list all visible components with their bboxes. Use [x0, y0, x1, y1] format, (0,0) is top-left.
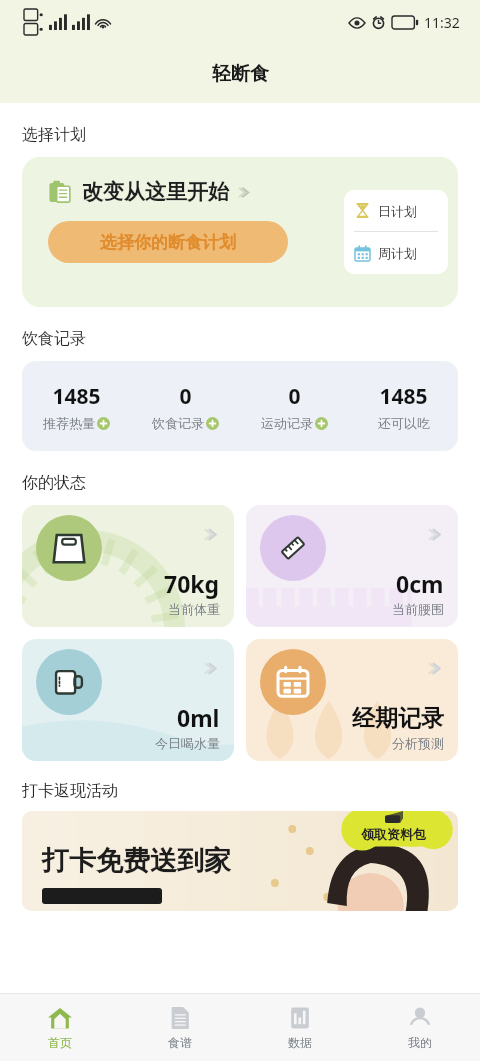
- staticText: 0ml: [177, 702, 220, 733]
- staticText: 打卡返现活动: [22, 781, 118, 801]
- staticText: 1485: [379, 382, 428, 411]
- button[interactable]: 0: [240, 382, 349, 431]
- button[interactable]: 0: [131, 382, 240, 431]
- staticText: 饮食记录: [152, 415, 204, 431]
- staticText: 分析预测: [392, 735, 444, 751]
- button[interactable]: 改变从这里开始: [22, 157, 458, 307]
- staticText: 日计划: [378, 203, 417, 219]
- staticText: 饮食记录: [22, 329, 86, 349]
- staticText: 推荐热量: [43, 415, 95, 431]
- button[interactable]: 日计划: [344, 190, 448, 231]
- button[interactable]: 经期: [246, 639, 458, 761]
- button[interactable]: 1485: [349, 382, 458, 431]
- staticText: 0cm: [396, 568, 444, 599]
- staticText: 当前腰围: [392, 601, 444, 617]
- staticText: 选择你的断食计划: [100, 232, 236, 253]
- staticText: 改变从这里开始: [82, 179, 229, 205]
- staticText: 数据: [288, 1035, 312, 1050]
- staticText: 0: [179, 382, 192, 411]
- staticText: 还可以吃: [378, 415, 430, 431]
- staticText: 1485: [52, 382, 101, 411]
- staticText: 0: [288, 382, 301, 411]
- button[interactable]: 喝水: [22, 639, 234, 761]
- staticText: 经期记录: [352, 704, 444, 733]
- staticText: 你的状态: [22, 473, 86, 493]
- staticText: 打卡免费送到家: [42, 844, 231, 878]
- button[interactable]: 1485: [22, 382, 131, 431]
- staticText: 今日喝水量: [155, 735, 220, 751]
- button[interactable]: 1485: [22, 361, 458, 451]
- button[interactable]: 体重: [22, 505, 234, 627]
- staticText: 我的: [408, 1035, 432, 1050]
- staticText: 运动记录: [261, 415, 313, 431]
- button[interactable]: 腰围: [246, 505, 458, 627]
- staticText: 70kg: [164, 568, 220, 599]
- button[interactable]: 我的: [360, 994, 480, 1061]
- staticText: 11:32: [424, 13, 460, 32]
- staticText: 轻断食: [212, 62, 269, 86]
- staticText: 周计划: [378, 245, 417, 261]
- button[interactable]: 选择你的断食计划: [48, 221, 288, 263]
- button[interactable]: 食谱: [120, 994, 240, 1061]
- staticText: 当前体重: [168, 601, 220, 617]
- staticText: 选择计划: [22, 125, 86, 145]
- button[interactable]: 首页: [0, 994, 120, 1061]
- staticText: 领取资料包: [361, 826, 426, 842]
- button[interactable]: 周计划: [344, 232, 448, 274]
- button[interactable]: 数据: [240, 994, 360, 1061]
- staticText: 首页: [48, 1035, 72, 1050]
- button[interactable]: 打卡免费送到家: [22, 811, 458, 911]
- staticText: 食谱: [168, 1035, 192, 1050]
